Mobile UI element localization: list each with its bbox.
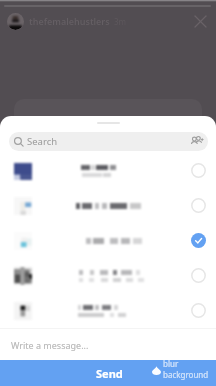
button[interactable]: Selected	[191, 233, 206, 248]
button[interactable]: Send	[96, 366, 123, 381]
button[interactable]: Select	[191, 268, 206, 283]
button[interactable]: Selected	[0, 223, 216, 258]
button[interactable]: Add people	[188, 133, 205, 150]
staticText: thefemalehustlers	[29, 15, 110, 27]
button[interactable]: Select	[0, 188, 216, 223]
button[interactable]: Write a message...	[11, 329, 216, 360]
staticText: Send	[96, 366, 123, 381]
staticText: blur	[163, 358, 179, 369]
staticText: Write a message...	[11, 339, 89, 351]
button[interactable]: Select	[191, 163, 206, 178]
button[interactable]: Select	[191, 198, 206, 213]
staticText: background	[163, 369, 209, 380]
button[interactable]: Search	[9, 132, 208, 151]
staticText: Search	[27, 135, 58, 148]
button[interactable]: Select	[0, 258, 216, 293]
button[interactable]: Select	[191, 303, 206, 318]
button[interactable]: Close	[190, 11, 210, 31]
button[interactable]: Select	[0, 153, 216, 188]
button[interactable]: Select	[0, 293, 216, 328]
